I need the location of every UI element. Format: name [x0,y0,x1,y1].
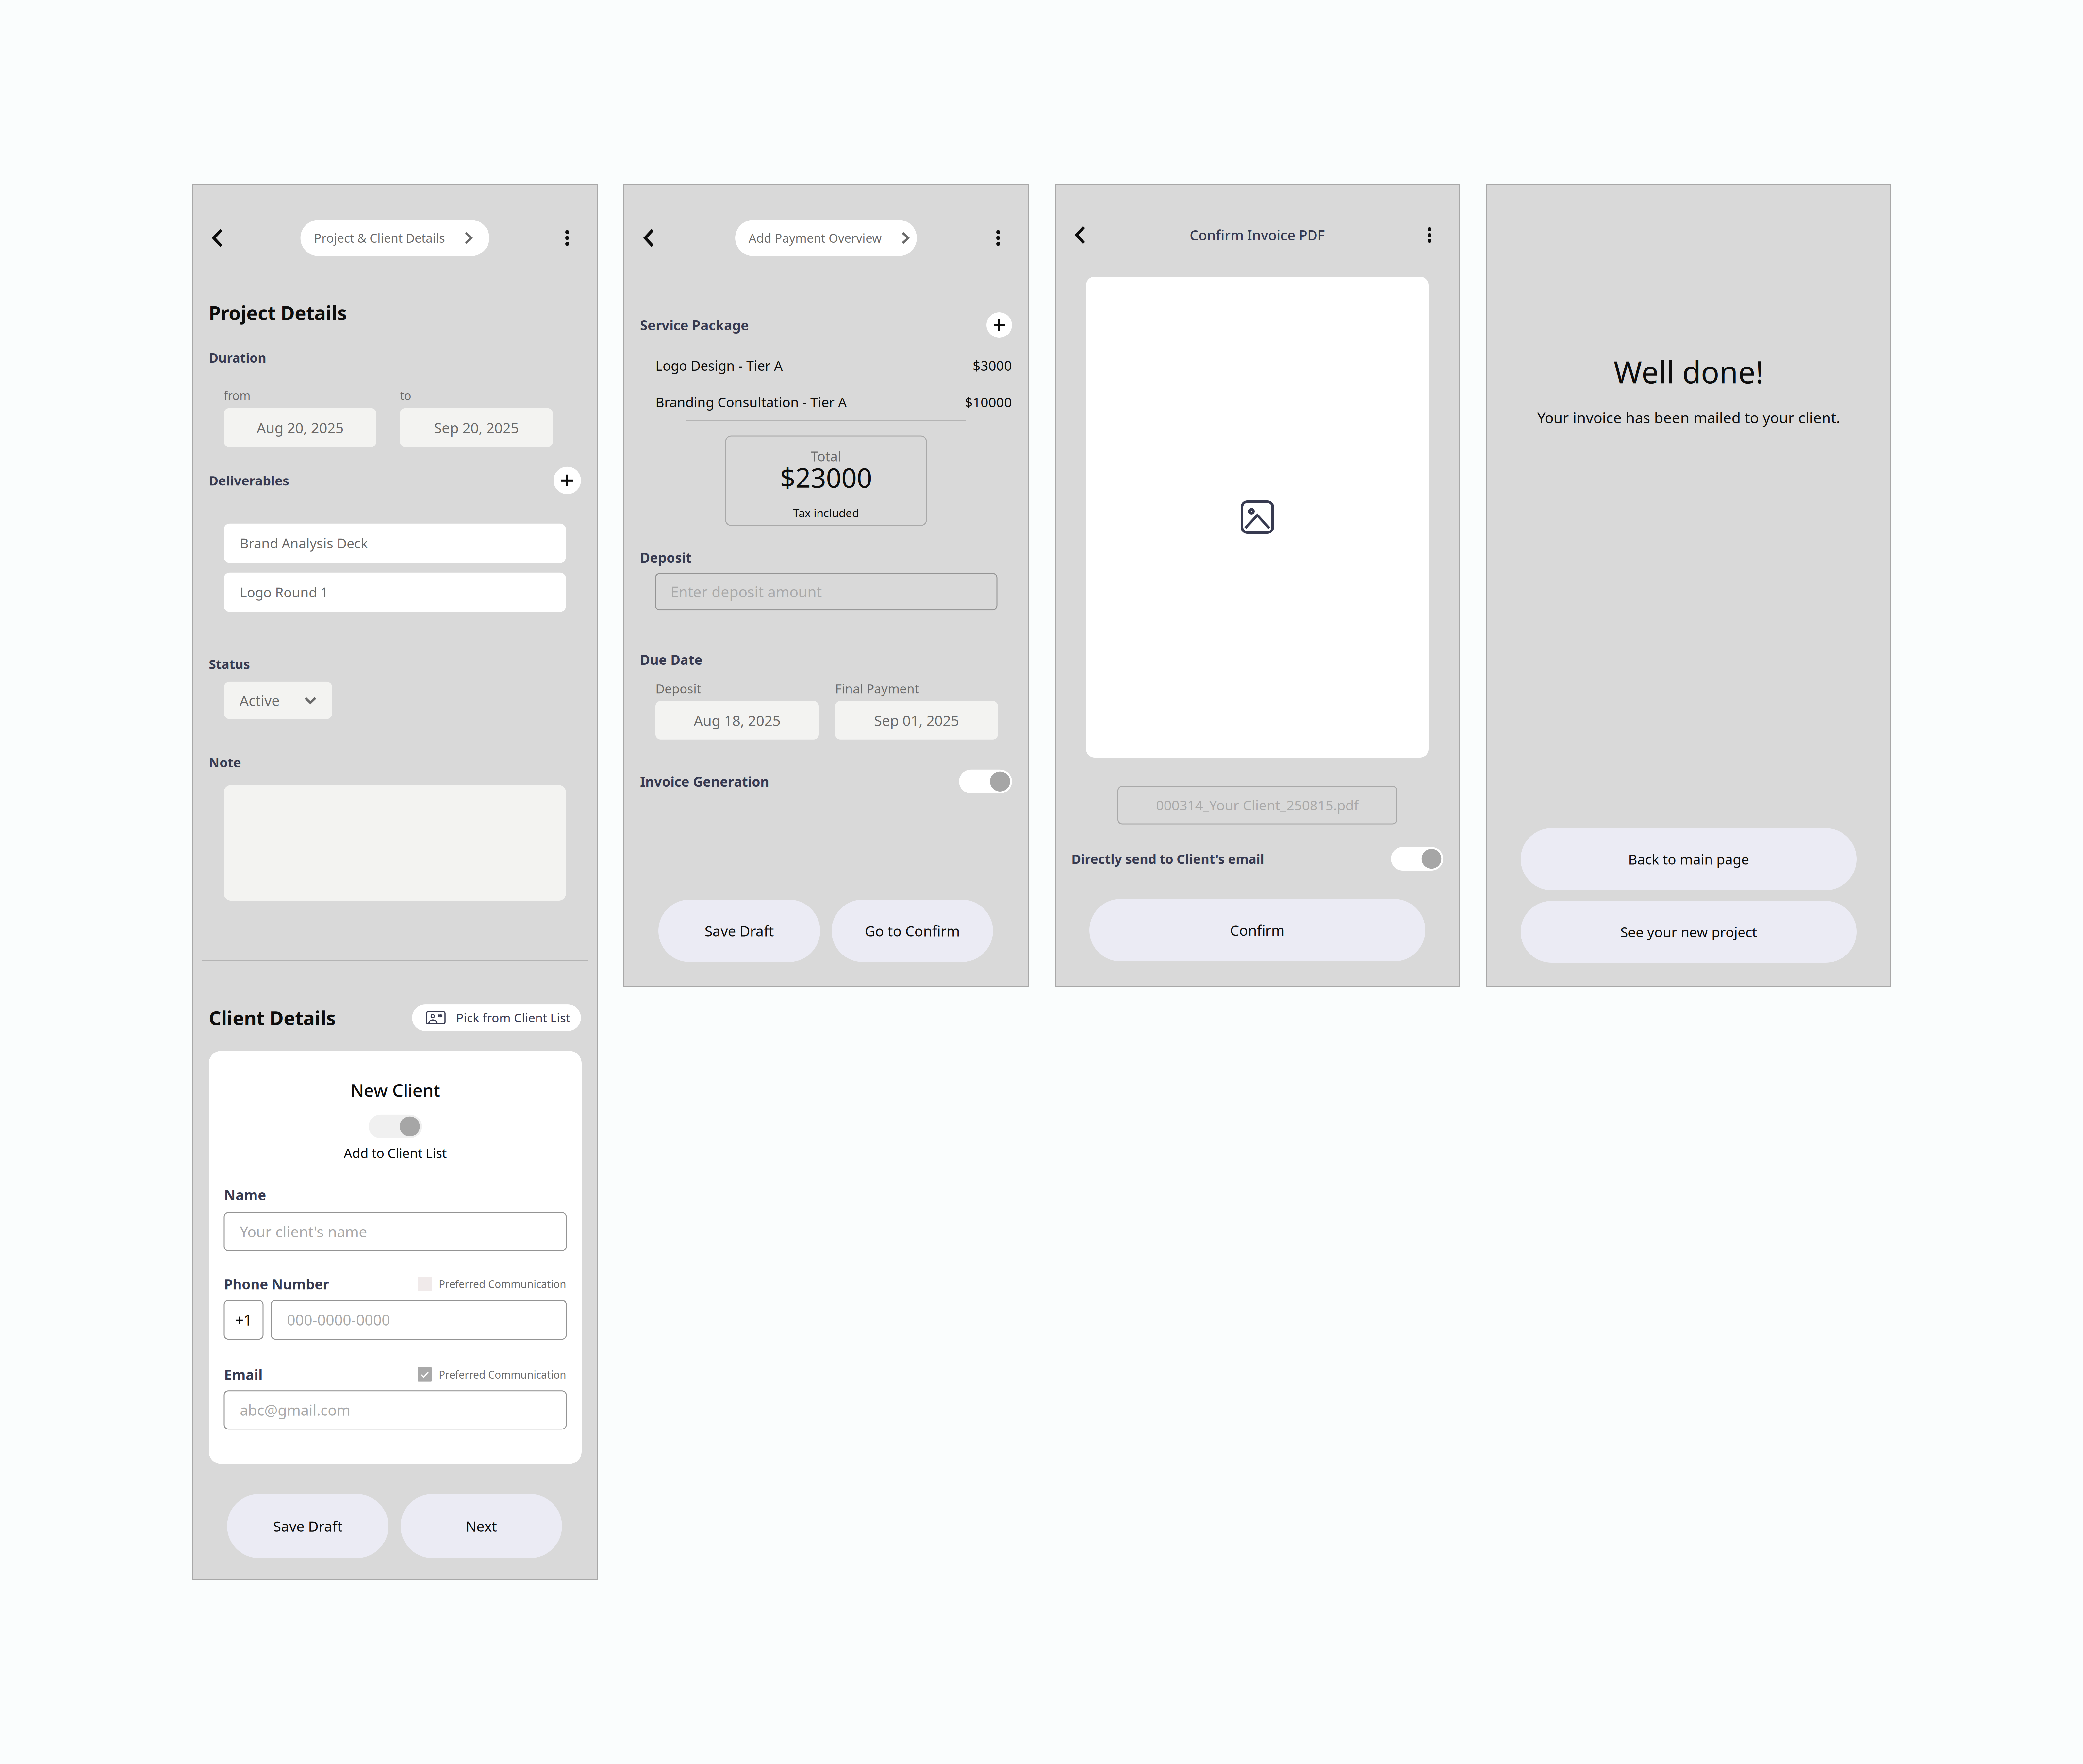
staticText: Service Package [640,316,749,334]
button[interactable]: Sep 01, 2025 [835,701,998,740]
staticText: Sep 20, 2025 [434,418,519,437]
staticText: Final Payment [835,680,919,697]
staticText: Deliverables [209,472,289,489]
button[interactable]: Back [640,220,658,256]
button[interactable]: Send to client email toggle [1391,847,1443,871]
button[interactable]: abc@gmail.com [224,1391,566,1429]
staticText: Client Details [209,1005,336,1030]
staticText: Sep 01, 2025 [874,711,959,730]
button[interactable]: Save Draft [227,1494,388,1558]
button[interactable]: Back [209,220,226,256]
staticText: See your new project [1620,923,1757,941]
staticText: Next [466,1517,497,1536]
staticText: Pick from Client List [456,1010,570,1026]
staticText: Save Draft [273,1517,342,1536]
staticText: Name [224,1185,266,1204]
staticText: 000-0000-0000 [287,1310,390,1330]
button[interactable]: More options [558,220,576,256]
staticText: Project & Client Details [314,230,445,246]
staticText: $3000 [973,357,1012,375]
staticText: Your invoice has been mailed to your cli… [1537,408,1840,427]
staticText: +1 [235,1310,252,1330]
staticText: Branding Consultation - Tier A [655,393,847,411]
staticText: Your client's name [240,1222,367,1241]
staticText: Phone Number [224,1275,329,1293]
staticText: Invoice Generation [640,773,769,790]
button[interactable]: See your new project [1521,901,1857,963]
staticText: Logo Round 1 [240,583,328,601]
staticText: from [224,387,251,403]
button[interactable]: More options [989,220,1007,256]
button[interactable]: Add Payment Overview [735,220,917,256]
button[interactable]: Aug 18, 2025 [655,701,819,740]
staticText: Preferred Communication [439,1277,566,1291]
button[interactable]: Back to main page [1521,828,1857,890]
staticText: Save Draft [705,921,774,940]
staticText: Confirm Invoice PDF [1190,226,1325,244]
button[interactable]: Aug 20, 2025 [224,408,376,447]
staticText: Preferred Communication [439,1368,566,1381]
button[interactable]: Go to Confirm [832,900,993,962]
button[interactable]: Invoice generation toggle [959,770,1012,793]
staticText: Total [811,447,841,465]
staticText: Add Payment Overview [749,230,882,246]
staticText: Brand Analysis Deck [240,534,368,552]
button[interactable]: Add service [986,312,1012,338]
staticText: 000314_Your Client_250815.pdf [1156,796,1359,814]
button[interactable]: Your client's name [224,1212,566,1251]
staticText: Deposit [640,548,692,566]
button[interactable]: Project & Client Details [300,220,489,256]
button[interactable]: Active [224,682,332,719]
staticText: $23000 [780,459,872,495]
staticText: Note [209,754,241,771]
staticText: Aug 20, 2025 [257,418,344,437]
staticText: abc@gmail.com [240,1400,350,1420]
staticText: Duration [209,349,266,366]
staticText: Add to Client List [344,1144,447,1162]
staticText: Confirm [1230,921,1285,940]
staticText: Tax included [793,505,859,520]
staticText: Deposit [655,680,701,697]
staticText: Back to main page [1628,850,1749,868]
staticText: Status [209,655,250,673]
staticText: Well done! [1614,351,1764,392]
staticText: Directly send to Client's email [1071,850,1264,867]
button[interactable]: Next [401,1494,562,1558]
staticText: Project Details [209,300,347,325]
button[interactable]: Pick from Client List [412,1005,581,1031]
button[interactable]: Sep 20, 2025 [400,408,553,447]
staticText: $10000 [965,393,1012,411]
button[interactable]: Back [1071,217,1089,253]
staticText: Due Date [640,651,703,669]
staticText: Enter deposit amount [670,582,822,601]
button[interactable]: Add deliverable [554,467,581,494]
staticText: Aug 18, 2025 [694,711,781,730]
button[interactable]: 000-0000-0000 [271,1300,566,1339]
staticText: Go to Confirm [865,921,960,940]
button[interactable]: Save Draft [658,900,820,962]
staticText: New Client [350,1078,440,1101]
staticText: Active [240,691,280,710]
button[interactable]: Enter deposit amount [655,573,997,610]
staticText: to [400,387,411,403]
staticText: Email [224,1365,263,1384]
button[interactable]: More options [1421,217,1438,253]
button[interactable]: Confirm [1089,899,1425,961]
staticText: Logo Design - Tier A [655,357,783,375]
